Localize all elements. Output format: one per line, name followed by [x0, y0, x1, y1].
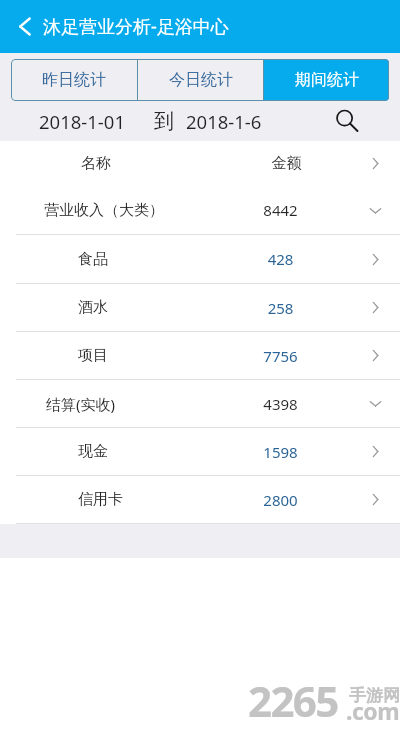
- staticText: 名称: [81, 154, 111, 173]
- button[interactable]: 现金: [0, 428, 400, 476]
- button[interactable]: 搜索: [332, 106, 362, 136]
- button[interactable]: 返回: [0, 0, 46, 53]
- button[interactable]: 酒水: [0, 284, 400, 332]
- staticText: 2265: [248, 672, 338, 729]
- button[interactable]: 结算(实收): [0, 380, 400, 428]
- button[interactable]: 名称: [0, 141, 400, 186]
- button[interactable]: 营业收入（大类）: [0, 186, 400, 235]
- staticText: 8442: [220, 200, 341, 220]
- button[interactable]: 期间统计: [264, 59, 389, 101]
- staticText: 4398: [220, 394, 341, 414]
- staticText: 信用卡: [78, 490, 123, 509]
- staticText: 2018-1-01: [39, 109, 125, 134]
- staticText: 手游网: [349, 685, 400, 706]
- staticText: 沐足营业分析-足浴中心: [43, 14, 229, 39]
- staticText: 期间统计: [295, 70, 359, 90]
- button[interactable]: 昨日统计: [11, 59, 137, 101]
- button[interactable]: 今日统计: [138, 59, 263, 101]
- staticText: 到: [154, 109, 174, 134]
- staticText: 金额: [226, 154, 347, 173]
- staticText: 食品: [78, 250, 108, 269]
- staticText: 今日统计: [169, 70, 233, 90]
- button[interactable]: 信用卡: [0, 476, 400, 524]
- staticText: 酒水: [78, 298, 108, 317]
- staticText: 1598: [220, 442, 341, 462]
- staticText: 结算(实收): [46, 394, 116, 414]
- button[interactable]: 食品: [0, 235, 400, 284]
- staticText: 项目: [78, 346, 108, 365]
- staticText: 昨日统计: [42, 70, 106, 90]
- staticText: 2018-1-6: [186, 109, 262, 134]
- staticText: 营业收入（大类）: [44, 201, 164, 220]
- staticText: 2800: [220, 490, 341, 510]
- staticText: 258: [220, 298, 341, 318]
- staticText: 现金: [78, 442, 108, 461]
- button[interactable]: 项目: [0, 332, 400, 380]
- staticText: .com: [346, 695, 400, 726]
- staticText: 7756: [220, 346, 341, 366]
- staticText: 428: [220, 249, 341, 269]
